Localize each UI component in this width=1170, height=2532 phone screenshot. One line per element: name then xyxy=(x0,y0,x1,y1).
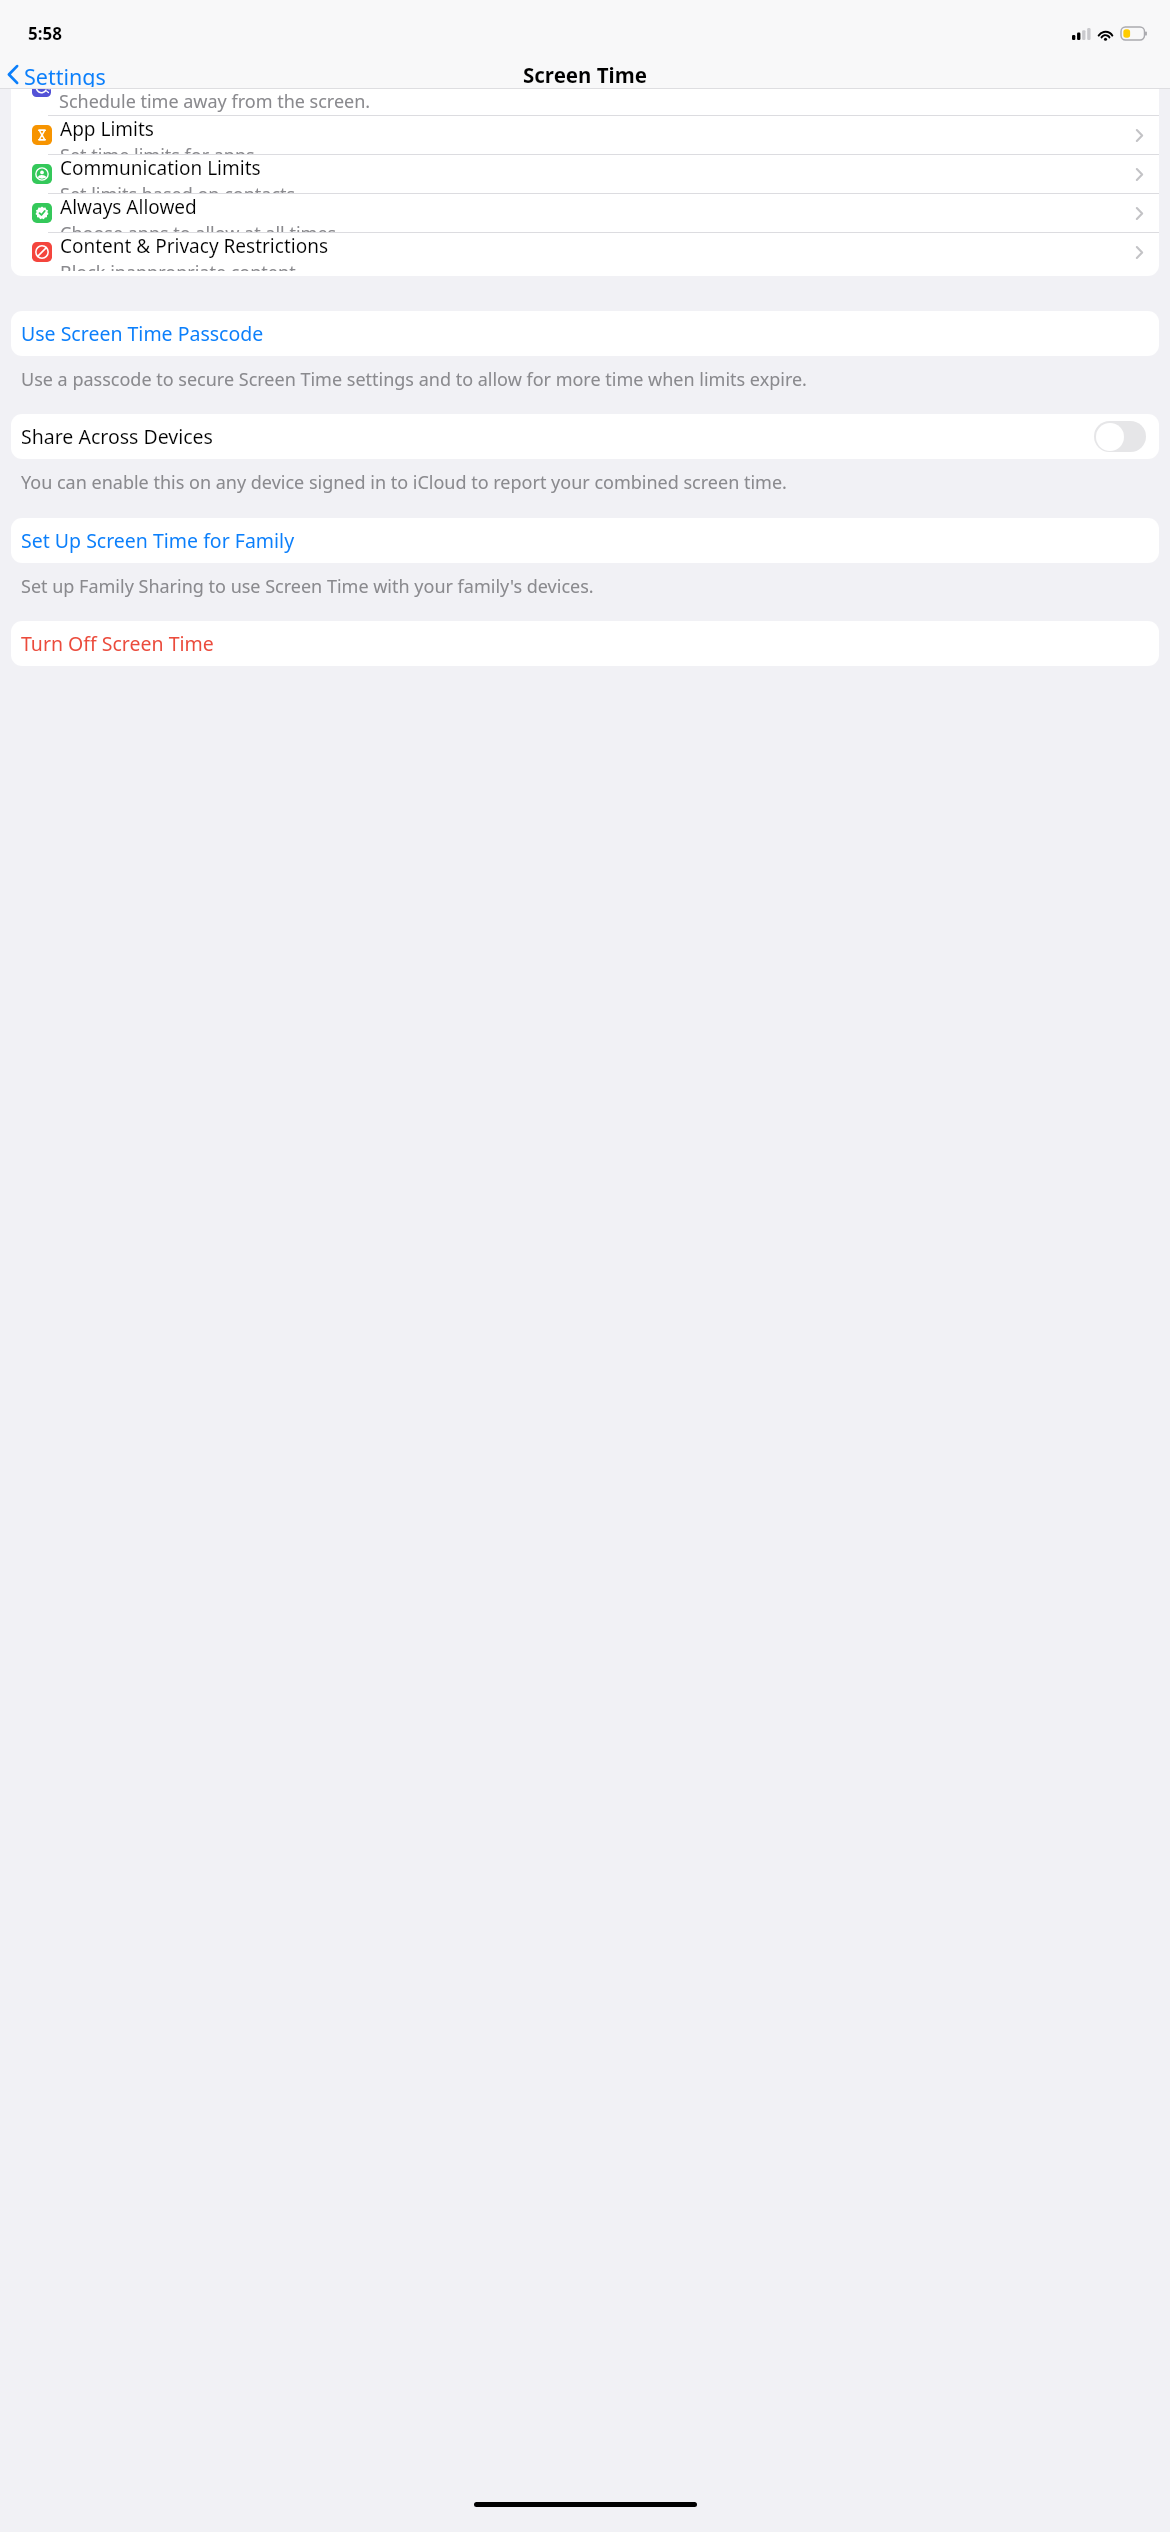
button[interactable]: Set Up Screen Time for Family xyxy=(11,518,1159,563)
staticText: Choose apps to allow at all times. xyxy=(60,221,341,232)
staticText: You can enable this on any device signed… xyxy=(21,470,787,495)
staticText: 5:58 xyxy=(28,22,62,45)
button[interactable]: Settings xyxy=(4,61,109,88)
staticText: Set time limits for apps. xyxy=(60,143,260,154)
button[interactable]: Use Screen Time Passcode xyxy=(11,311,1159,356)
staticText: Always Allowed xyxy=(60,194,197,220)
button[interactable]: Content & Privacy Restrictions xyxy=(11,233,1159,271)
staticText: Set Up Screen Time for Family xyxy=(21,527,295,554)
staticText: Share Across Devices xyxy=(21,423,1094,450)
staticText: Communication Limits xyxy=(60,155,261,181)
button[interactable]: Always Allowed xyxy=(11,194,1159,232)
staticText: App Limits xyxy=(60,116,154,142)
staticText: Set limits based on contacts. xyxy=(60,182,300,193)
button[interactable]: App Limits xyxy=(11,116,1159,154)
button[interactable]: Turn Off Screen Time xyxy=(11,621,1159,666)
staticText: Use Screen Time Passcode xyxy=(21,320,264,347)
staticText: Settings xyxy=(24,62,106,87)
staticText: Block inappropriate content. xyxy=(60,260,301,271)
button[interactable]: Schedule time away from the screen. xyxy=(11,89,1159,115)
staticText: Screen Time xyxy=(523,61,647,88)
staticText: Turn Off Screen Time xyxy=(21,630,214,657)
staticText: Schedule time away from the screen. xyxy=(59,89,371,114)
staticText: Use a passcode to secure Screen Time set… xyxy=(21,367,807,392)
staticText: Set up Family Sharing to use Screen Time… xyxy=(21,574,594,599)
button[interactable]: Communication Limits xyxy=(11,155,1159,193)
staticText: Content & Privacy Restrictions xyxy=(60,233,328,259)
button[interactable]: Share Across Devices xyxy=(11,414,1159,459)
